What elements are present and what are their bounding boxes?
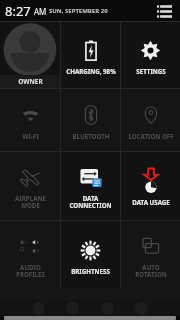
staticText: BLUETOOTH (72, 132, 110, 140)
button[interactable]: AUDIO PROFILES (0, 221, 60, 289)
button[interactable]: DATA USAGE (121, 152, 180, 220)
staticText: WI-FI (22, 132, 39, 140)
button[interactable]: Notifications list (154, 1, 174, 21)
staticText: AUTO ROTATION (135, 263, 167, 279)
button[interactable]: AUTO ROTATION (121, 221, 180, 289)
button[interactable]: BLUETOOTH (61, 89, 120, 151)
staticText: 8:27 (5, 2, 31, 20)
button[interactable]: WI-FI (0, 89, 60, 151)
button[interactable]: CHARGING, 98% (61, 22, 120, 88)
staticText: AUDIO PROFILES (16, 263, 45, 279)
staticText: DATA USAGE (132, 198, 170, 206)
staticText: BRIGHTNESS (71, 267, 110, 275)
button[interactable]: SETTINGS (121, 22, 180, 88)
button[interactable]: OWNER (0, 22, 60, 88)
button[interactable]: DATA CONNECTION (61, 152, 120, 220)
staticText: DATA CONNECTION (69, 194, 112, 210)
staticText: LOCATION OFF (128, 132, 174, 140)
button[interactable]: LOCATION OFF (121, 89, 180, 151)
staticText: SUN, SEPTEMBER 20 (49, 7, 108, 15)
staticText: CHARGING, 98% (66, 67, 116, 75)
staticText: SETTINGS (136, 67, 166, 75)
staticText: OWNER (18, 77, 43, 86)
button[interactable]: BRIGHTNESS (61, 221, 120, 289)
button[interactable]: AIRPLANE MODE (0, 152, 60, 220)
staticText: AIRPLANE MODE (15, 194, 46, 210)
staticText: AM (34, 6, 47, 17)
